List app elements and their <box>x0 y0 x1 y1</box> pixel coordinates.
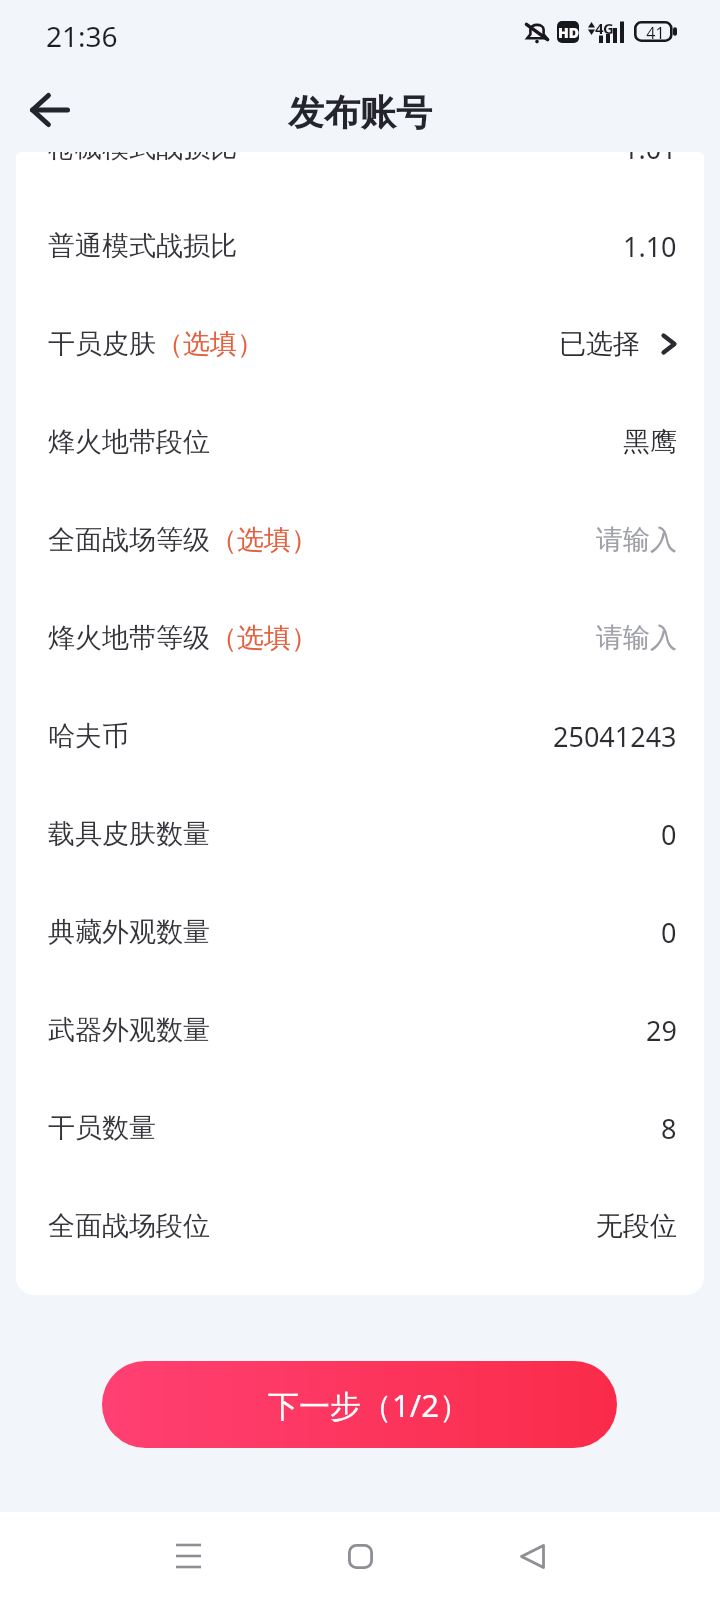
staticText: 1.10 <box>623 228 677 265</box>
staticText: 25041243 <box>553 718 677 755</box>
button[interactable]: Home <box>312 1512 408 1600</box>
button[interactable]: 全面战场段位 <box>16 1177 704 1275</box>
staticText: 21:36 <box>46 17 118 55</box>
staticText: 请输入 <box>596 621 677 655</box>
button[interactable]: 干员数量 <box>16 1079 704 1177</box>
staticText: 全面战场等级（选填） <box>48 523 318 557</box>
staticText: 1.01 <box>623 152 677 167</box>
staticText: 41 <box>641 22 670 44</box>
staticText: 干员数量 <box>48 1111 156 1145</box>
staticText: 全面战场段位 <box>48 1209 210 1243</box>
button[interactable]: Back <box>484 1512 580 1600</box>
staticText: 29 <box>646 1012 677 1049</box>
button[interactable]: 烽火地带等级（选填） <box>16 589 704 687</box>
staticText: 请输入 <box>596 523 677 557</box>
button[interactable]: 载具皮肤数量 <box>16 785 704 883</box>
staticText: 已选择 <box>559 327 640 361</box>
button[interactable]: 典藏外观数量 <box>16 883 704 981</box>
staticText: HD <box>558 23 579 42</box>
button[interactable]: Back <box>12 72 88 148</box>
button[interactable]: 下一步（1/2） <box>102 1361 617 1448</box>
staticText: 普通模式战损比 <box>48 229 237 263</box>
staticText: 黑鹰 <box>623 425 677 459</box>
staticText: 发布账号 <box>288 90 432 135</box>
staticText: 8 <box>661 1110 677 1147</box>
staticText: 0 <box>661 816 677 853</box>
staticText: 载具皮肤数量 <box>48 817 210 851</box>
button[interactable]: Recent apps <box>140 1512 236 1600</box>
staticText: 哈夫币 <box>48 719 129 753</box>
staticText: 4G <box>595 18 614 38</box>
staticText: 0 <box>661 914 677 951</box>
staticText: 枪械模式战损比 <box>48 152 237 165</box>
button[interactable]: 普通模式战损比 <box>16 197 704 295</box>
button[interactable]: 武器外观数量 <box>16 981 704 1079</box>
staticText: 烽火地带等级（选填） <box>48 621 318 655</box>
staticText: 无段位 <box>596 1209 677 1243</box>
button[interactable]: 全面战场等级（选填） <box>16 491 704 589</box>
staticText: 下一步（1/2） <box>268 1384 470 1426</box>
button[interactable]: 干员皮肤（选填） <box>16 295 704 393</box>
button[interactable]: 哈夫币 <box>16 687 704 785</box>
button[interactable]: 烽火地带段位 <box>16 393 704 491</box>
staticText: 烽火地带段位 <box>48 425 210 459</box>
button[interactable]: 枪械模式战损比 <box>16 152 704 197</box>
staticText: 干员皮肤（选填） <box>48 327 264 361</box>
staticText: 武器外观数量 <box>48 1013 210 1047</box>
staticText: 典藏外观数量 <box>48 915 210 949</box>
